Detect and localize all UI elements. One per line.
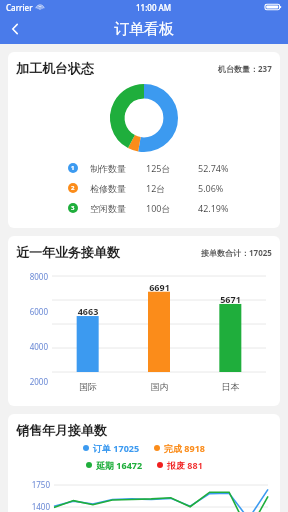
staticText: 国内 — [124, 381, 195, 392]
button[interactable]: 2 — [16, 178, 272, 198]
staticText: 日本 — [195, 381, 266, 392]
button[interactable]: 报废 881 — [157, 459, 203, 471]
staticText: 完成 8918 — [164, 442, 205, 454]
staticText: 5671 — [195, 293, 266, 305]
staticText: 5.06% — [198, 182, 224, 194]
button[interactable]: 完成 8918 — [154, 442, 205, 454]
staticText: 1750 — [16, 479, 50, 490]
staticText: 空闲数量 — [90, 203, 126, 214]
staticText: 12台 — [146, 182, 166, 194]
staticText: 1 — [71, 164, 75, 172]
button[interactable]: Back — [0, 14, 30, 44]
staticText: 4663 — [52, 305, 124, 317]
button[interactable]: 3 — [16, 198, 272, 218]
staticText: 制作数量 — [90, 163, 126, 174]
staticText: 机台数量：237 — [218, 63, 272, 74]
staticText: 42.19% — [198, 202, 229, 214]
staticText: 2 — [71, 184, 75, 192]
staticText: 销售年月接单数 — [16, 422, 107, 438]
staticText: 国际 — [52, 381, 124, 392]
staticText: 125台 — [146, 162, 171, 174]
button[interactable]: 销售年月接单数 — [8, 414, 280, 512]
staticText: 6000 — [16, 306, 48, 317]
staticText: 52.74% — [198, 162, 229, 174]
staticText: 2000 — [16, 376, 48, 387]
staticText: 1400 — [16, 501, 50, 512]
button[interactable]: 订单 17025 — [83, 442, 140, 454]
staticText: Carrier — [6, 2, 33, 13]
button[interactable]: 延期 16472 — [86, 459, 143, 471]
staticText: 6691 — [124, 281, 195, 293]
staticText: 近一年业务接单数 — [16, 244, 120, 260]
staticText: 4000 — [16, 341, 48, 352]
button[interactable]: 近一年业务接单数 — [8, 236, 280, 406]
button[interactable]: 1 — [16, 158, 272, 178]
staticText: 接单数合计：17025 — [201, 247, 272, 258]
staticText: 订单 17025 — [93, 442, 140, 454]
staticText: 100台 — [146, 202, 171, 214]
staticText: 检修数量 — [90, 183, 126, 194]
staticText: 加工机台状态 — [16, 60, 94, 76]
staticText: 3 — [71, 204, 75, 212]
staticText: 报废 881 — [167, 459, 203, 471]
staticText: 延期 16472 — [96, 459, 143, 471]
staticText: 11:00 AM — [136, 2, 172, 13]
staticText: 订单看板 — [114, 20, 174, 39]
button[interactable]: 加工机台状态 — [8, 52, 280, 228]
staticText: 8000 — [16, 271, 48, 282]
